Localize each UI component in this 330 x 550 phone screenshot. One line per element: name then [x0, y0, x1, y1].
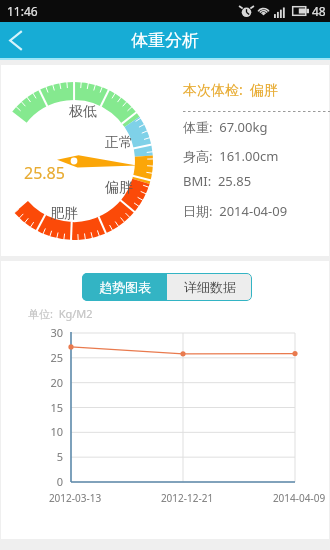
staticText: 身高: 161.00cm: [183, 147, 279, 165]
staticText: BMI: 25.85: [183, 172, 252, 190]
staticText: 2014-04-09: [268, 491, 330, 505]
staticText: 2012-03-13: [44, 491, 106, 505]
button[interactable]: 趋势图表: [82, 273, 167, 301]
staticText: 趋势图表: [99, 279, 151, 295]
staticText: 详细数据: [184, 279, 236, 295]
staticText: 30: [41, 325, 63, 340]
staticText: 48: [312, 3, 326, 19]
staticText: 极低: [69, 103, 97, 121]
staticText: 肥胖: [50, 205, 78, 223]
staticText: 体重: 67.00kg: [183, 118, 268, 136]
staticText: 25: [41, 350, 63, 365]
staticText: 20: [41, 375, 63, 390]
staticText: 15: [41, 400, 63, 415]
button[interactable]: 详细数据: [167, 273, 252, 301]
staticText: 5: [41, 449, 63, 464]
staticText: 本次体检: 偏胖: [183, 80, 279, 99]
staticText: 10: [41, 424, 63, 439]
staticText: 偏胖: [105, 179, 133, 197]
staticText: 单位: Kg/M2: [28, 306, 93, 321]
staticText: 2012-12-21: [156, 491, 218, 505]
staticText: 日期: 2014-04-09: [183, 202, 288, 220]
staticText: 正常: [105, 134, 133, 152]
staticText: 体重分析: [131, 30, 199, 51]
staticText: 25.85: [24, 162, 65, 184]
staticText: 0: [41, 474, 63, 489]
staticText: 11:46: [7, 3, 38, 19]
button[interactable]: Back: [0, 22, 32, 58]
